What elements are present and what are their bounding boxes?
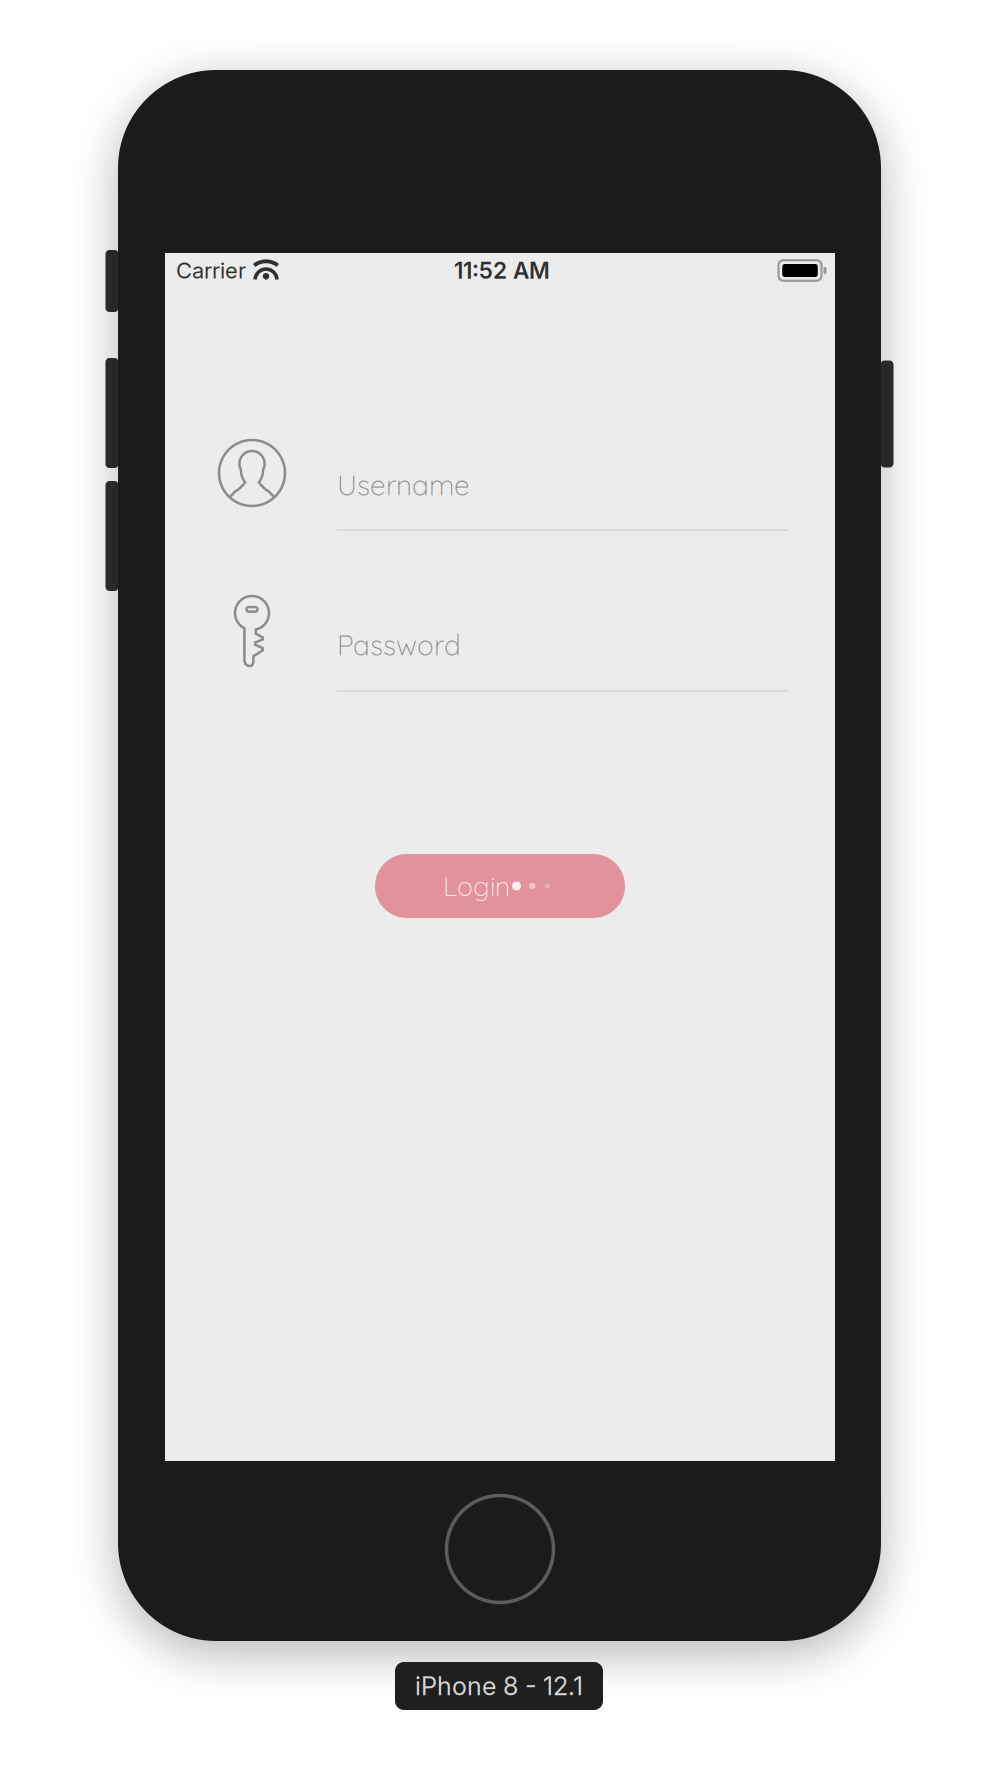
staticText: Password (337, 627, 461, 662)
staticText: iPhone 8 - 12.1 (415, 1671, 583, 1701)
staticText: Carrier (176, 257, 246, 284)
staticText: Username (337, 467, 470, 502)
staticText: 11:52 AM (454, 257, 550, 284)
staticText: Login (443, 869, 510, 903)
button[interactable]: Login (375, 854, 625, 918)
